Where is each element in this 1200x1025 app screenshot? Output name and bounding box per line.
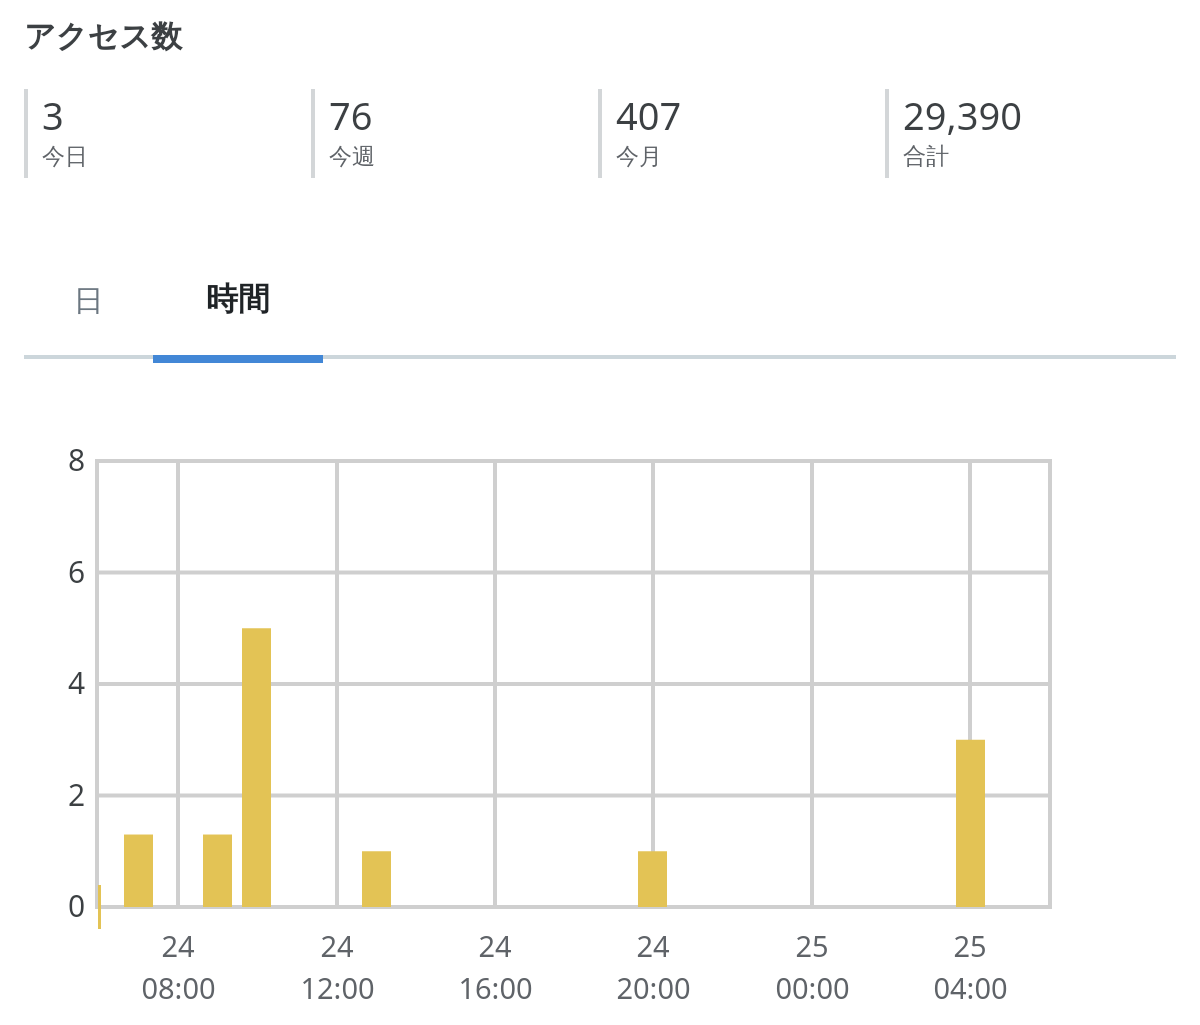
staticText: 0 xyxy=(68,885,86,926)
staticText: 25 xyxy=(795,926,829,965)
button[interactable]: 407 xyxy=(598,89,682,178)
staticText: 08:00 xyxy=(141,968,216,1007)
staticText: 24 xyxy=(320,926,354,965)
staticText: 00:00 xyxy=(775,968,850,1007)
staticText: 6 xyxy=(68,551,86,592)
staticText: 今週 xyxy=(329,142,375,171)
staticText: 時間 xyxy=(153,279,323,319)
staticText: 25 xyxy=(953,926,987,965)
button[interactable]: 3 xyxy=(24,89,88,178)
staticText: 4 xyxy=(68,662,86,703)
staticText: 合計 xyxy=(903,142,949,171)
staticText: 今月 xyxy=(616,142,662,171)
staticText: 12:00 xyxy=(300,968,375,1007)
staticText: 16:00 xyxy=(458,968,533,1007)
button[interactable]: 時間 xyxy=(153,264,323,359)
staticText: 今日 xyxy=(42,142,88,171)
staticText: 2 xyxy=(68,774,86,815)
button[interactable]: 29,390 xyxy=(885,89,1022,178)
staticText: 24 xyxy=(478,926,512,965)
staticText: 24 xyxy=(161,926,195,965)
staticText: 20:00 xyxy=(616,968,691,1007)
staticText: 29,390 xyxy=(903,89,1022,141)
staticText: 76 xyxy=(329,89,373,141)
button[interactable]: 日 xyxy=(24,264,153,359)
staticText: 3 xyxy=(42,89,64,141)
button[interactable]: 76 xyxy=(311,89,375,178)
staticText: 407 xyxy=(616,89,682,141)
staticText: 日 xyxy=(24,282,153,320)
staticText: 04:00 xyxy=(933,968,1008,1007)
staticText: 8 xyxy=(68,439,86,480)
staticText: 24 xyxy=(636,926,670,965)
staticText: アクセス数 xyxy=(24,17,182,56)
